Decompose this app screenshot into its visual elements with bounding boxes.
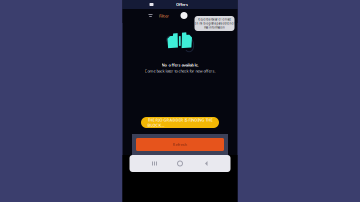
staticText: Filter — [159, 13, 169, 19]
staticText: No offers available. — [161, 62, 198, 68]
button[interactable]: Home — [173, 157, 186, 170]
staticText: más información — [204, 26, 225, 29]
staticText: THE RJO GRABBER IS FINDING THE BLOCK... — [147, 117, 212, 128]
staticText: recuerda revisar el enlace — [197, 18, 231, 21]
staticText: Offers — [176, 2, 188, 7]
button[interactable]: Recents — [147, 157, 160, 170]
button[interactable]: Refresh — [136, 138, 224, 151]
staticText: Refresh — [172, 142, 187, 147]
staticText: en mi biografía para obtener — [194, 22, 234, 25]
button[interactable]: Filter — [148, 11, 169, 20]
button[interactable]: Wallet — [147, 0, 155, 9]
button[interactable]: Back — [199, 157, 212, 170]
staticText: Come back later to check for new offers. — [144, 68, 215, 74]
